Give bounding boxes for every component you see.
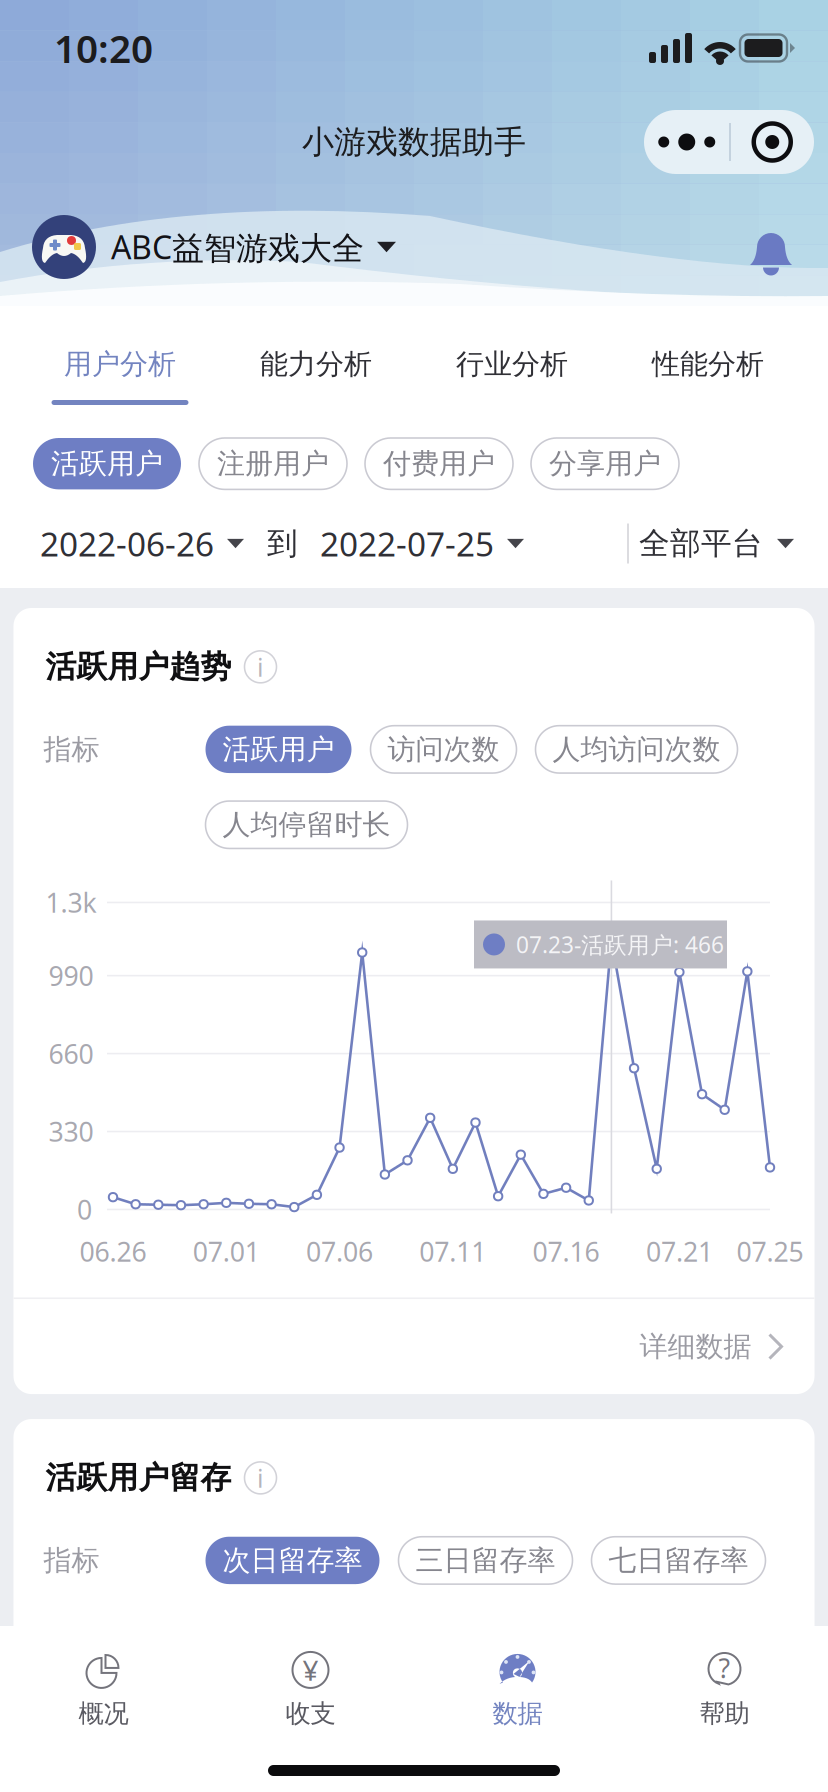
- button[interactable]: 访问次数: [370, 726, 516, 773]
- button[interactable]: ¥: [207, 1626, 414, 1738]
- staticText: 活跃用户趋势: [45, 648, 231, 686]
- staticText: ABC益智游戏大全: [111, 226, 364, 268]
- button[interactable]: ABC益智游戏大全: [32, 215, 396, 279]
- staticText: 行业分析: [456, 347, 568, 381]
- button[interactable]: 全部平台: [629, 525, 794, 562]
- button[interactable]: 七日留存率: [591, 1537, 765, 1584]
- staticText: 2022-06-26: [40, 521, 214, 566]
- staticText: 人均停留时长: [222, 808, 390, 842]
- button[interactable]: 付费用户: [365, 438, 513, 489]
- staticText: 活跃用户: [51, 446, 163, 481]
- button[interactable]: Notifications: [746, 218, 796, 276]
- button[interactable]: ?: [621, 1626, 828, 1738]
- staticText: 活跃用户留存: [45, 1459, 231, 1497]
- staticText: 06.26: [79, 1234, 146, 1269]
- button[interactable]: 活跃用户: [33, 438, 181, 489]
- staticText: 概况: [78, 1698, 128, 1729]
- staticText: 用户分析: [64, 347, 176, 381]
- staticText: 1.3k: [45, 885, 96, 920]
- staticText: 990: [48, 958, 93, 993]
- staticText: 注册用户: [217, 446, 329, 481]
- button[interactable]: 行业分析: [414, 306, 610, 410]
- staticText: 07.01: [193, 1234, 260, 1269]
- button[interactable]: Close mini program: [731, 111, 814, 173]
- staticText: 三日留存率: [415, 1543, 555, 1578]
- button[interactable]: 概况: [0, 1626, 207, 1738]
- button[interactable]: 2022-07-25: [298, 521, 524, 566]
- staticText: 次日留存率: [222, 1543, 362, 1578]
- staticText: 人均访问次数: [552, 732, 720, 767]
- staticText: 指标: [43, 1543, 99, 1578]
- button[interactable]: 性能分析: [610, 306, 806, 410]
- staticText: ¥: [302, 1651, 318, 1689]
- staticText: 分享用户: [549, 446, 661, 481]
- staticText: 07.16: [533, 1234, 600, 1269]
- staticText: 性能分析: [652, 347, 764, 381]
- button[interactable]: 分享用户: [531, 438, 679, 489]
- staticText: 付费用户: [383, 446, 495, 481]
- staticText: 七日留存率: [608, 1543, 748, 1578]
- staticText: i: [257, 1461, 264, 1495]
- staticText: 07.11: [419, 1234, 486, 1269]
- button[interactable]: 三日留存率: [398, 1537, 572, 1584]
- staticText: 指标: [43, 732, 99, 767]
- button[interactable]: More: [644, 111, 729, 173]
- button[interactable]: 人均访问次数: [535, 726, 737, 773]
- staticText: 10:20: [54, 22, 153, 74]
- button[interactable]: 用户分析: [22, 306, 218, 410]
- staticText: 数据: [492, 1698, 542, 1729]
- staticText: 07.25: [736, 1234, 803, 1269]
- button[interactable]: 人均停留时长: [205, 801, 407, 848]
- staticText: 0: [77, 1192, 92, 1227]
- staticText: 07.23-活跃用户: 466: [516, 929, 724, 959]
- button[interactable]: 活跃用户: [205, 726, 351, 773]
- staticText: ?: [718, 1650, 730, 1686]
- button[interactable]: 次日留存率: [205, 1537, 379, 1584]
- button[interactable]: 详细数据: [13, 1299, 814, 1394]
- staticText: i: [257, 650, 264, 684]
- staticText: 全部平台: [639, 525, 763, 562]
- staticText: 660: [48, 1036, 93, 1071]
- staticText: 帮助: [699, 1698, 749, 1729]
- button[interactable]: 能力分析: [218, 306, 414, 410]
- staticText: 小游戏数据助手: [302, 122, 526, 162]
- staticText: 能力分析: [260, 347, 372, 381]
- staticText: 07.21: [646, 1234, 713, 1269]
- staticText: 07.06: [306, 1234, 373, 1269]
- button[interactable]: 注册用户: [199, 438, 347, 489]
- staticText: 访问次数: [387, 732, 499, 767]
- staticText: 到: [267, 525, 298, 562]
- staticText: 2022-07-25: [320, 521, 494, 566]
- button[interactable]: 2022-06-26: [40, 521, 244, 566]
- staticText: 详细数据: [639, 1329, 751, 1364]
- staticText: 收支: [285, 1698, 335, 1729]
- button[interactable]: 数据: [414, 1626, 621, 1738]
- staticText: 活跃用户: [222, 732, 334, 767]
- staticText: 330: [48, 1114, 93, 1149]
